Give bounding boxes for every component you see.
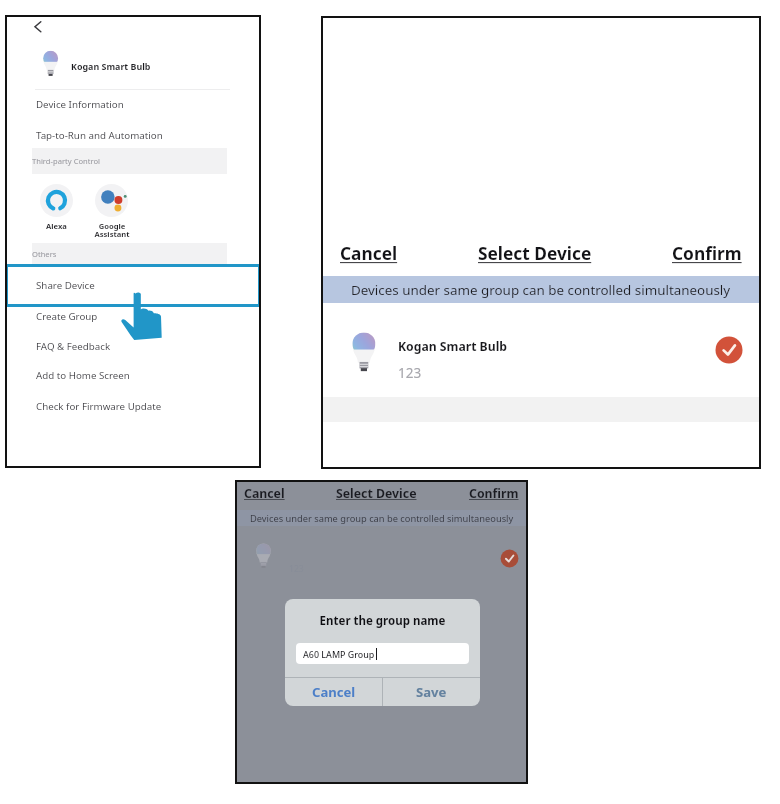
- staticText: Select Device: [336, 485, 417, 502]
- button[interactable]: [321, 303, 761, 397]
- staticText: Cancel: [244, 485, 285, 502]
- staticText: Share Device: [36, 279, 95, 292]
- staticText: 123: [398, 364, 422, 382]
- button[interactable]: Check for Firmware Update: [5, 391, 261, 421]
- button[interactable]: Tap-to-Run and Automation: [5, 120, 261, 150]
- button[interactable]: Alexa: [34, 184, 79, 231]
- button[interactable]: Cancel: [340, 242, 398, 266]
- staticText: Check for Firmware Update: [36, 400, 162, 413]
- button[interactable]: Select Device: [336, 485, 417, 502]
- staticText: Alexa: [46, 221, 67, 231]
- staticText: A60 LAMP Group: [303, 648, 375, 660]
- staticText: Tap-to-Run and Automation: [36, 129, 163, 142]
- staticText: Kogan Smart Bulb: [398, 338, 507, 355]
- button[interactable]: Save: [383, 678, 480, 706]
- button[interactable]: Back: [28, 17, 48, 37]
- button[interactable]: Device Information: [5, 89, 261, 119]
- staticText: Confirm: [469, 485, 519, 502]
- staticText: Devices under same group can be controll…: [351, 281, 731, 299]
- staticText: Third-party Control: [32, 156, 100, 166]
- button[interactable]: Confirm: [469, 485, 519, 502]
- button[interactable]: Selected: [714, 335, 744, 365]
- button[interactable]: Google Assistant: [89, 184, 134, 240]
- button[interactable]: Cancel: [285, 678, 382, 706]
- staticText: Cancel: [340, 242, 398, 266]
- staticText: Others: [32, 249, 57, 259]
- staticText: Add to Home Screen: [36, 369, 130, 382]
- staticText: Devices under same group can be controll…: [250, 512, 514, 525]
- staticText: Kogan Smart Bulb: [71, 60, 151, 72]
- button[interactable]: Select Device: [478, 242, 592, 266]
- staticText: FAQ & Feedback: [36, 340, 111, 353]
- button[interactable]: FAQ & Feedback: [5, 331, 261, 361]
- staticText: Save: [416, 683, 447, 701]
- button[interactable]: Add to Home Screen: [5, 360, 261, 390]
- button[interactable]: Create Group: [5, 301, 261, 331]
- staticText: Create Group: [36, 310, 98, 323]
- staticText: Confirm: [672, 242, 742, 266]
- staticText: Google Assistant: [94, 221, 130, 240]
- staticText: Enter the group name: [285, 613, 480, 629]
- button[interactable]: Cancel: [244, 485, 285, 502]
- button[interactable]: A60 LAMP Group: [296, 643, 469, 664]
- staticText: Device Information: [36, 98, 124, 111]
- button[interactable]: Confirm: [672, 242, 742, 266]
- staticText: Select Device: [478, 242, 592, 266]
- staticText: Cancel: [312, 683, 356, 701]
- button[interactable]: Share Device: [5, 264, 261, 307]
